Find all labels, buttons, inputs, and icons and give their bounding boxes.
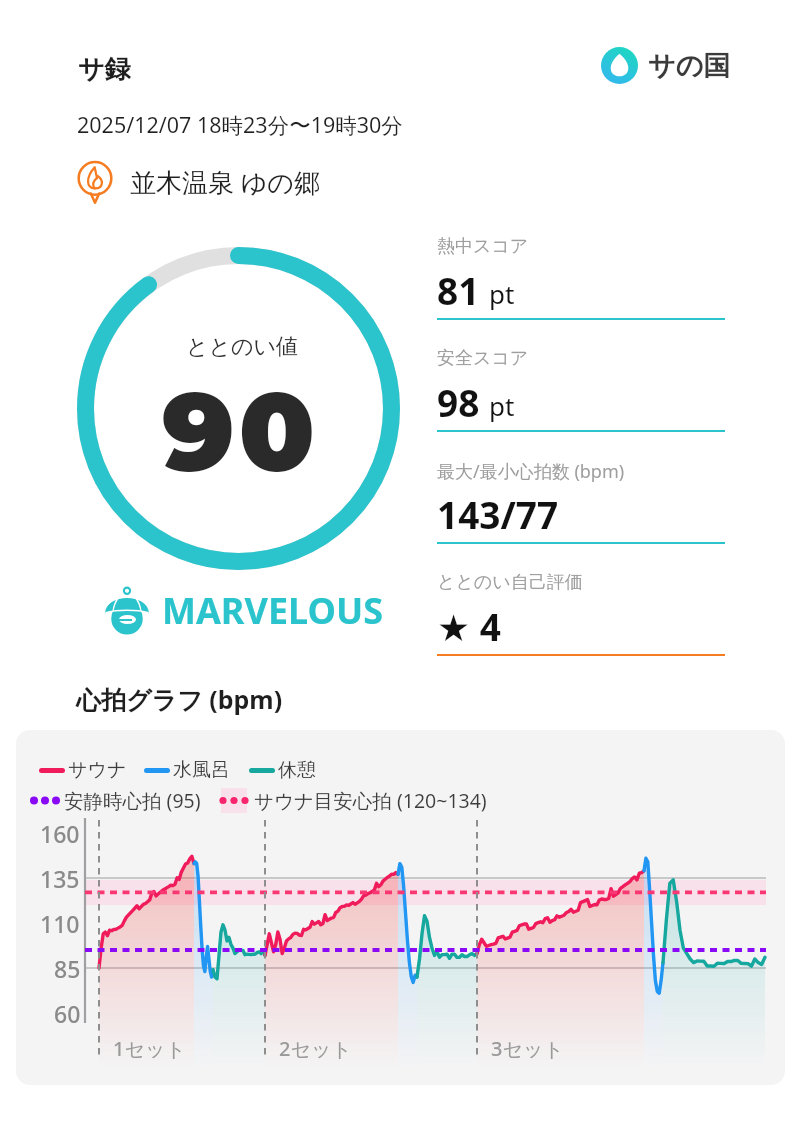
- button[interactable]: 最大/最小心拍数 (bpm): [437, 456, 725, 568]
- staticText: ととのい自己評価: [437, 571, 583, 594]
- staticText: サウナ: [68, 758, 127, 782]
- staticText: pt: [489, 276, 515, 311]
- staticText: 81: [437, 265, 480, 315]
- staticText: 3セット: [491, 1035, 564, 1062]
- staticText: 並木温泉 ゆの郷: [130, 164, 320, 200]
- staticText: pt: [489, 388, 515, 423]
- staticText: 1セット: [113, 1035, 186, 1062]
- button[interactable]: サの国 logo: [601, 47, 731, 84]
- other: Sauna location: [72, 159, 118, 205]
- button[interactable]: ととのい自己評価: [437, 568, 725, 680]
- staticText: 143/77: [437, 489, 559, 539]
- button[interactable]: 熱中スコア: [437, 232, 725, 344]
- staticText: ととのい値: [186, 333, 299, 361]
- staticText: サの国: [648, 49, 731, 83]
- staticText: 心拍グラフ (bpm): [76, 682, 283, 716]
- staticText: MARVELOUS: [162, 586, 383, 635]
- staticText: 水風呂: [173, 758, 230, 782]
- staticText: 160: [40, 818, 80, 849]
- staticText: 60: [54, 998, 81, 1029]
- staticText: 110: [40, 908, 80, 939]
- staticText: 2025/12/07 18時23分〜19時30分: [77, 110, 403, 139]
- staticText: サ録: [78, 53, 131, 86]
- staticText: 休憩: [278, 758, 316, 782]
- staticText: 熱中スコア: [437, 235, 529, 258]
- staticText: 90: [162, 364, 319, 498]
- staticText: 85: [54, 953, 81, 984]
- staticText: 135: [40, 863, 80, 894]
- other: Sauna hat: [102, 585, 152, 635]
- staticText: 2セット: [279, 1035, 352, 1062]
- staticText: 最大/最小心拍数 (bpm): [437, 459, 625, 484]
- staticText: 安全スコア: [437, 347, 529, 370]
- button[interactable]: 安全スコア: [437, 344, 725, 456]
- staticText: サウナ目安心拍 (120~134): [254, 787, 487, 814]
- staticText: 安静時心拍 (95): [64, 787, 201, 814]
- staticText: ★ 4: [437, 601, 501, 651]
- button[interactable]: Sauna location: [72, 159, 320, 205]
- staticText: 98: [437, 377, 480, 427]
